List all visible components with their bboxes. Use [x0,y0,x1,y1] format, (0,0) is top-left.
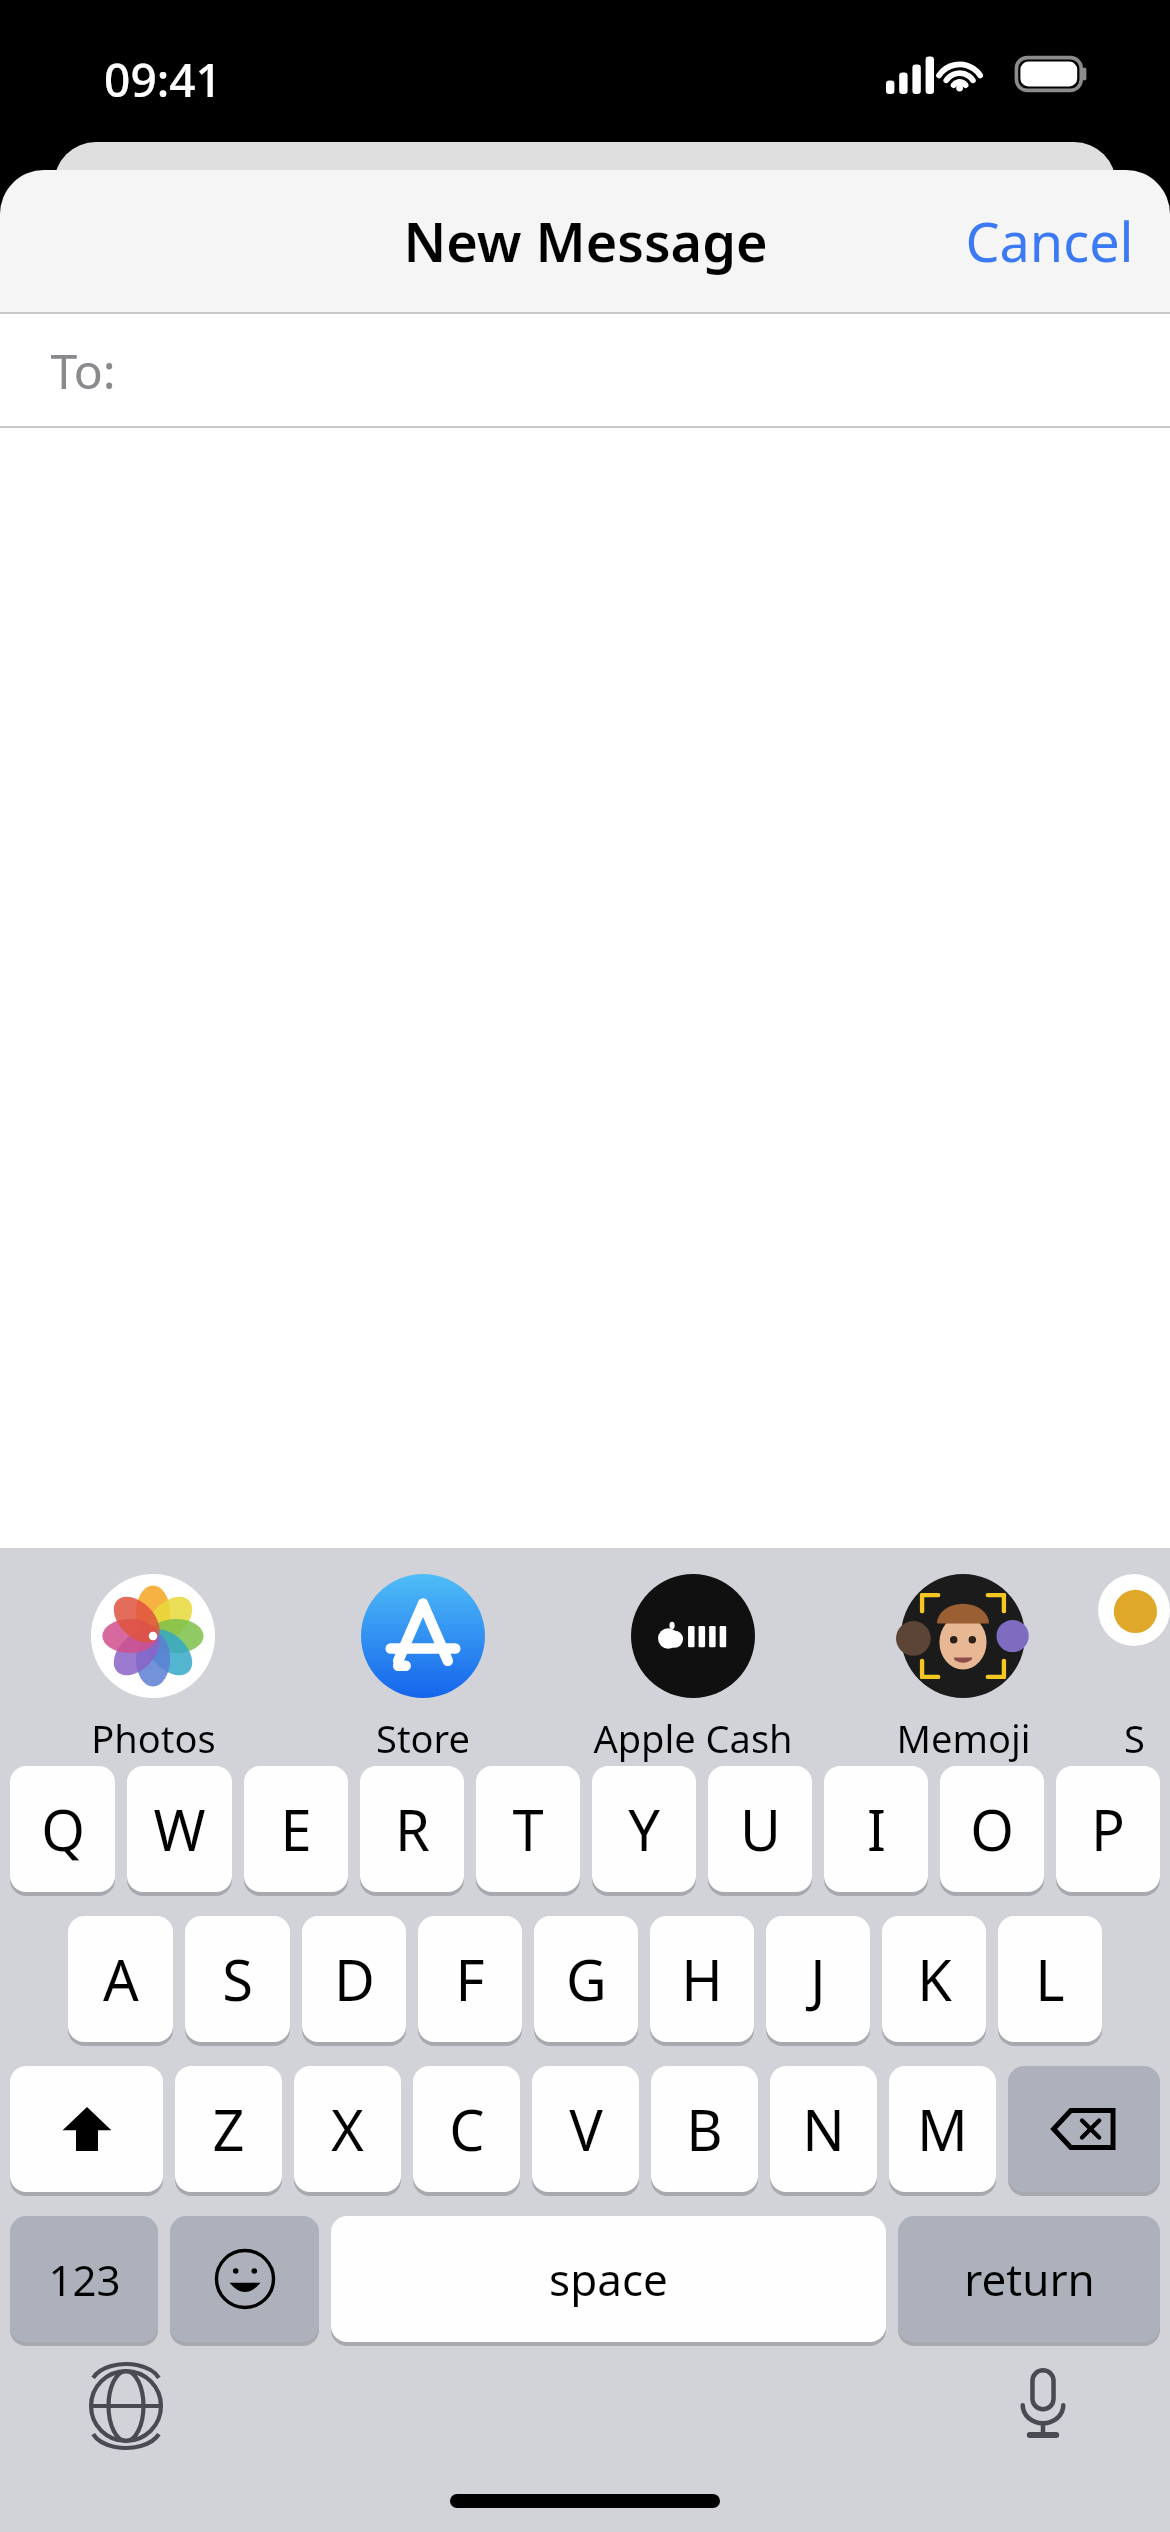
staticText: Z [212,2091,245,2167]
staticText: Memoji [896,1712,1031,1764]
staticText: 123 [48,2251,121,2308]
button[interactable]: Z [175,2066,282,2192]
staticText: To: [50,338,116,403]
button[interactable]: I [824,1766,928,1892]
staticText: New Message [403,204,768,278]
staticText: return [964,2249,1095,2309]
staticText: Store [376,1712,470,1764]
button[interactable]: U [708,1766,812,1892]
button[interactable]: Store [288,1548,558,1764]
button[interactable]: Shift [10,2066,163,2192]
button[interactable]: Emoji [170,2216,319,2342]
button[interactable]: J [766,1916,870,2042]
button[interactable]: P [1056,1766,1160,1892]
button[interactable]: Cancel [929,182,1170,300]
staticText: F [455,1941,485,2017]
button[interactable]: O [940,1766,1044,1892]
staticText: M [917,2091,968,2167]
button[interactable]: Backspace [1008,2066,1160,2192]
button[interactable]: W [127,1766,232,1892]
button[interactable]: Q [10,1766,115,1892]
button[interactable]: Y [592,1766,696,1892]
staticText: Cancel [965,204,1134,278]
button[interactable]: R [360,1766,464,1892]
staticText: S [222,1941,253,2017]
button[interactable]: T [476,1766,580,1892]
button[interactable]: B [651,2066,758,2192]
button[interactable]: S [1098,1548,1170,1764]
staticText: X [331,2091,364,2167]
staticText: N [802,2091,845,2167]
button[interactable]: D [302,1916,406,2042]
staticText: V [569,2091,603,2167]
button[interactable]: return [898,2216,1160,2342]
button[interactable]: F [418,1916,522,2042]
button[interactable]: Memoji [828,1548,1098,1764]
staticText: U [740,1791,781,1867]
button[interactable]: C [413,2066,520,2192]
button[interactable]: S [185,1916,290,2042]
staticText: Y [628,1791,660,1867]
button[interactable]: X [294,2066,401,2192]
staticText: D [334,1941,375,2017]
button[interactable]: Photos [18,1548,288,1764]
button[interactable]: Apple Cash [558,1548,828,1764]
staticText: L [1035,1941,1065,2017]
staticText: space [549,2249,668,2309]
staticText: Apple Cash [593,1712,793,1764]
button[interactable]: H [650,1916,754,2042]
staticText: C [449,2091,485,2167]
button[interactable]: G [534,1916,638,2042]
staticText: Q [41,1791,85,1867]
button[interactable]: space [331,2216,886,2342]
staticText: 09:41 [104,48,222,111]
staticText: H [681,1941,723,2017]
button[interactable]: E [244,1766,348,1892]
staticText: Photos [91,1712,216,1764]
staticText: J [810,1941,826,2017]
staticText: K [917,1941,952,2017]
button[interactable]: L [998,1916,1102,2042]
staticText: P [1091,1791,1125,1867]
button[interactable]: N [770,2066,877,2192]
button[interactable]: Change keyboard language [78,2358,174,2454]
button[interactable]: K [882,1916,986,2042]
staticText: T [512,1791,544,1867]
staticText: O [970,1791,1014,1867]
staticText: I [867,1791,886,1867]
staticText: B [686,2091,723,2167]
button[interactable]: Numbers [10,2216,158,2342]
button[interactable]: To: [0,314,1170,426]
button[interactable]: V [532,2066,639,2192]
button[interactable]: Dictate [994,2354,1092,2452]
button[interactable]: A [68,1916,173,2042]
staticText: G [566,1941,607,2017]
staticText: W [153,1791,206,1867]
staticText: S [1124,1712,1145,1764]
staticText: A [103,1941,139,2017]
staticText: R [395,1791,430,1867]
button[interactable]: M [889,2066,996,2192]
staticText: E [280,1791,312,1867]
